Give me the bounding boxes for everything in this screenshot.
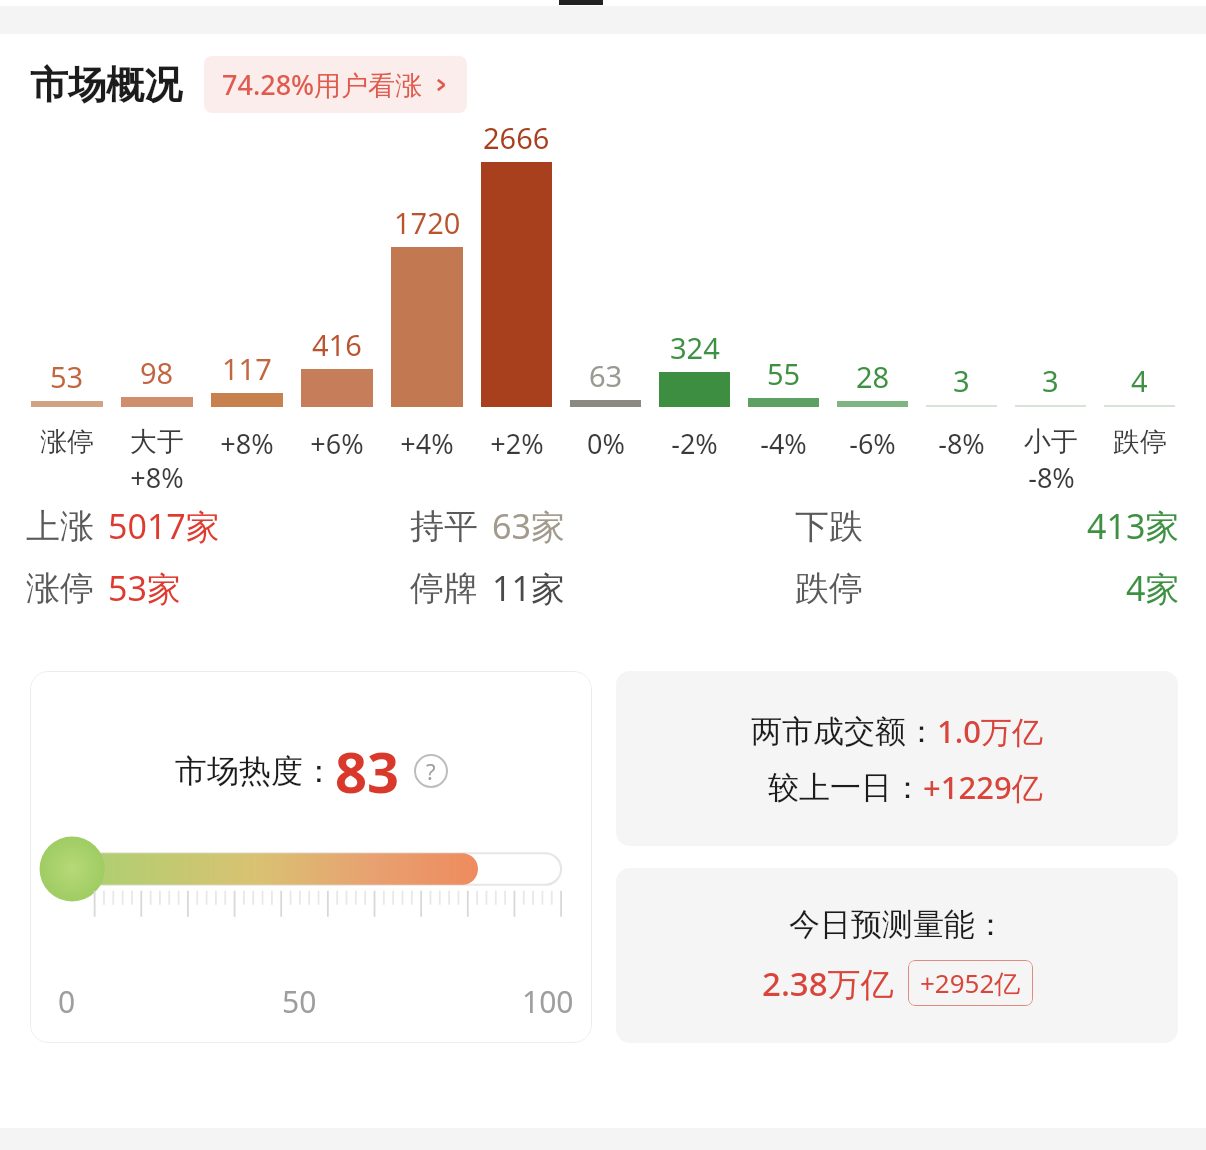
staticText: 市场热度： bbox=[175, 751, 335, 791]
staticText: 4家 bbox=[1126, 565, 1180, 611]
staticText: 4 bbox=[1131, 361, 1148, 400]
staticText: 3 bbox=[1042, 361, 1059, 400]
staticText: 小于 bbox=[1024, 425, 1078, 459]
staticText: -8% bbox=[938, 425, 985, 462]
staticText: 74.28%用户看涨 bbox=[222, 66, 423, 103]
staticText: 2.38万亿 bbox=[762, 961, 894, 1006]
staticText: 63 bbox=[589, 356, 623, 395]
staticText: 停牌 bbox=[410, 567, 478, 610]
button[interactable]: Help bbox=[414, 754, 448, 788]
staticText: +4% bbox=[400, 425, 454, 462]
staticText: 0 bbox=[58, 981, 76, 1022]
button[interactable]: 74.28%用户看涨 bbox=[204, 56, 467, 113]
staticText: 50 bbox=[282, 981, 317, 1022]
staticText: -6% bbox=[849, 425, 896, 462]
button[interactable]: 市场热度： bbox=[30, 671, 592, 1043]
staticText: 持平 bbox=[410, 505, 478, 548]
staticText: -8% bbox=[1028, 459, 1075, 496]
staticText: 涨停 bbox=[40, 425, 94, 459]
staticText: 跌停 bbox=[1113, 425, 1167, 459]
staticText: 55 bbox=[767, 354, 801, 393]
staticText: 28 bbox=[856, 357, 890, 396]
staticText: +2% bbox=[490, 425, 544, 462]
staticText: +1229亿 bbox=[923, 766, 1043, 808]
staticText: 市场概况 bbox=[30, 61, 182, 109]
staticText: 下跌 bbox=[795, 505, 863, 548]
staticText: -4% bbox=[760, 425, 807, 462]
staticText: 上涨 bbox=[26, 505, 94, 548]
staticText: 0% bbox=[587, 425, 625, 462]
staticText: 3 bbox=[953, 361, 970, 400]
staticText: 今日预测量能： bbox=[789, 905, 1006, 944]
staticText: +8% bbox=[220, 425, 274, 462]
staticText: 63家 bbox=[492, 503, 565, 549]
staticText: -2% bbox=[671, 425, 718, 462]
staticText: 83 bbox=[335, 733, 400, 809]
staticText: +6% bbox=[310, 425, 364, 462]
staticText: 1720 bbox=[394, 203, 461, 242]
staticText: ? bbox=[426, 756, 436, 786]
staticText: 较上一日： bbox=[768, 768, 923, 807]
button[interactable]: 今日预测量能： bbox=[616, 868, 1178, 1043]
staticText: 413家 bbox=[1087, 503, 1180, 549]
staticText: 1.0万亿 bbox=[937, 710, 1043, 752]
staticText: 2666 bbox=[483, 118, 550, 157]
staticText: 117 bbox=[222, 349, 272, 388]
staticText: 53家 bbox=[108, 565, 181, 611]
staticText: +8% bbox=[130, 459, 184, 496]
staticText: 11家 bbox=[492, 565, 565, 611]
staticText: 涨停 bbox=[26, 567, 94, 610]
staticText: 98 bbox=[140, 353, 174, 392]
staticText: 324 bbox=[670, 328, 720, 367]
staticText: 416 bbox=[312, 325, 362, 364]
staticText: +2952亿 bbox=[920, 965, 1021, 1001]
staticText: 跌停 bbox=[795, 567, 863, 610]
staticText: 5017家 bbox=[108, 503, 220, 549]
staticText: 大于 bbox=[130, 425, 184, 459]
button[interactable]: 两市成交额： bbox=[616, 671, 1178, 846]
staticText: 两市成交额： bbox=[751, 712, 937, 751]
staticText: 100 bbox=[522, 981, 574, 1022]
staticText: 53 bbox=[50, 357, 84, 396]
